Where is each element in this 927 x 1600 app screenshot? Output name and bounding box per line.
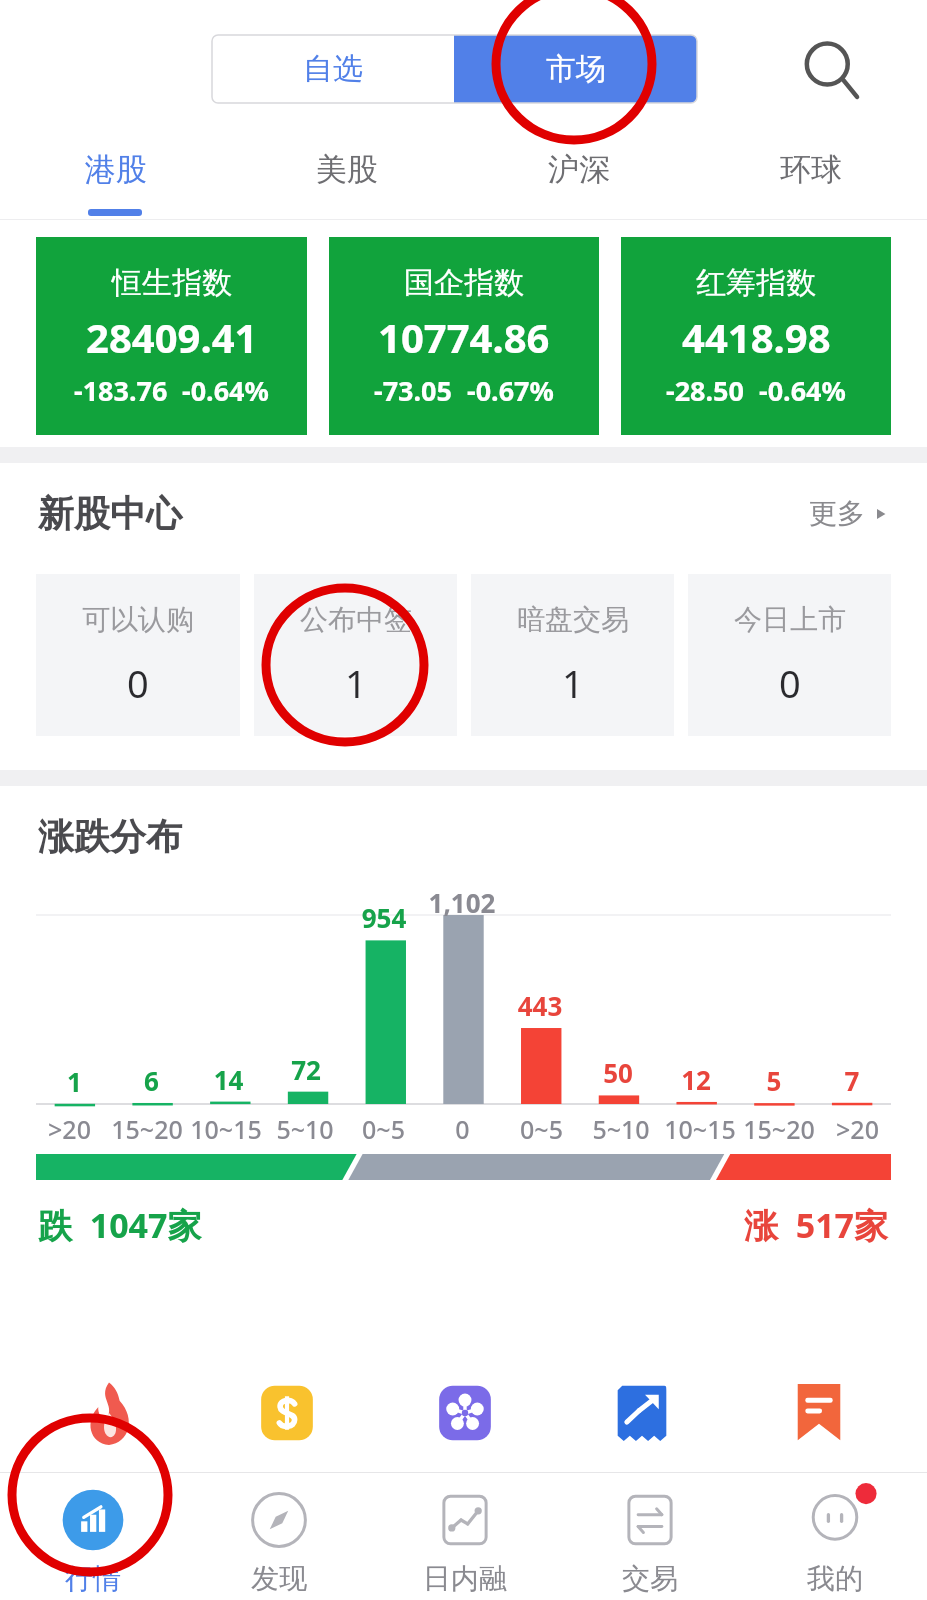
staticText: 红筹指数 bbox=[696, 264, 816, 302]
staticText: 15~20 bbox=[743, 1112, 815, 1146]
staticText: 港股 bbox=[85, 150, 147, 189]
staticText: 行情 bbox=[65, 1561, 121, 1596]
staticText: 15~20 bbox=[111, 1112, 183, 1146]
staticText: 可以认购 bbox=[82, 602, 194, 637]
button[interactable]: 热门 bbox=[20, 1354, 198, 1472]
button[interactable]: 红筹指数 bbox=[621, 237, 891, 435]
staticText: -28.50 bbox=[666, 372, 745, 409]
staticText: 0 bbox=[779, 657, 801, 709]
button[interactable]: 暗盘交易 bbox=[471, 574, 674, 736]
staticText: 恒生指数 bbox=[112, 264, 232, 302]
button[interactable]: 港股 bbox=[0, 125, 231, 213]
staticText: 1,102 bbox=[423, 885, 501, 920]
staticText: 5~10 bbox=[592, 1112, 650, 1146]
staticText: 日内融 bbox=[423, 1561, 507, 1596]
staticText: 72 bbox=[267, 1052, 345, 1087]
staticText: 6 bbox=[113, 1063, 190, 1098]
staticText: 沪深 bbox=[548, 150, 610, 189]
staticText: 美股 bbox=[316, 150, 378, 189]
staticText: 国企指数 bbox=[404, 264, 524, 302]
staticText: -73.05 bbox=[374, 372, 453, 409]
button[interactable]: Search bbox=[790, 28, 872, 110]
staticText: 50 bbox=[579, 1055, 657, 1090]
staticText: -0.67% bbox=[467, 372, 554, 409]
staticText: 更多 bbox=[809, 496, 865, 531]
staticText: -0.64% bbox=[182, 372, 269, 409]
staticText: 暗盘交易 bbox=[517, 602, 629, 637]
staticText: 12 bbox=[657, 1062, 735, 1097]
staticText: 5~10 bbox=[276, 1112, 334, 1146]
button[interactable]: 今日上市 bbox=[688, 574, 891, 736]
staticText: -0.64% bbox=[759, 372, 846, 409]
button[interactable]: 国企指数 bbox=[329, 237, 599, 435]
staticText: 0 bbox=[127, 657, 149, 709]
staticText: 28409.41 bbox=[86, 310, 258, 364]
button[interactable]: 恒生指数 bbox=[36, 237, 307, 435]
staticText: 954 bbox=[345, 900, 423, 935]
button[interactable]: 环球 bbox=[695, 125, 927, 213]
button[interactable]: 资金 bbox=[198, 1354, 376, 1472]
button[interactable]: 交易 bbox=[557, 1473, 742, 1600]
staticText: 5 bbox=[735, 1063, 813, 1098]
button[interactable]: 更多 bbox=[809, 496, 889, 531]
button[interactable]: 行情 bbox=[0, 1473, 186, 1600]
button[interactable]: 日内融 bbox=[372, 1473, 557, 1600]
button[interactable]: 公布中签 bbox=[254, 574, 457, 736]
staticText: 10~15 bbox=[664, 1112, 736, 1146]
button[interactable]: 市场 bbox=[454, 35, 697, 103]
staticText: 4418.98 bbox=[682, 310, 831, 364]
staticText: 自选 bbox=[303, 50, 363, 88]
staticText: -183.76 bbox=[74, 372, 168, 409]
button[interactable]: 发现 bbox=[186, 1473, 372, 1600]
staticText: 跌 1047家 bbox=[38, 1202, 202, 1248]
button[interactable]: 资讯 bbox=[730, 1354, 907, 1472]
staticText: 今日上市 bbox=[734, 602, 846, 637]
staticText: 10~15 bbox=[190, 1112, 262, 1146]
staticText: 公布中签 bbox=[300, 602, 412, 637]
staticText: >20 bbox=[48, 1112, 91, 1146]
button[interactable]: 沪深 bbox=[463, 125, 695, 213]
staticText: 10774.86 bbox=[378, 310, 550, 364]
button[interactable]: 港股通 bbox=[376, 1354, 553, 1472]
staticText: 1 bbox=[562, 657, 584, 709]
staticText: 1 bbox=[345, 657, 367, 709]
staticText: 0~5 bbox=[520, 1112, 563, 1146]
staticText: 涨跌分布 bbox=[38, 814, 182, 859]
staticText: 0 bbox=[455, 1112, 470, 1146]
staticText: 新股中心 bbox=[38, 491, 182, 536]
staticText: 涨 517家 bbox=[744, 1202, 889, 1248]
staticText: 14 bbox=[190, 1062, 267, 1097]
button[interactable]: 我的 bbox=[742, 1473, 927, 1600]
staticText: 7 bbox=[813, 1063, 891, 1098]
staticText: >20 bbox=[836, 1112, 879, 1146]
staticText: 市场 bbox=[546, 50, 606, 88]
button[interactable]: 自选 bbox=[212, 35, 454, 103]
staticText: 环球 bbox=[780, 150, 842, 189]
staticText: 发现 bbox=[251, 1561, 307, 1596]
button[interactable]: 美股 bbox=[231, 125, 463, 213]
button[interactable]: 可以认购 bbox=[36, 574, 240, 736]
staticText: 我的 bbox=[807, 1561, 863, 1596]
staticText: 0~5 bbox=[362, 1112, 405, 1146]
button[interactable]: 行情走势 bbox=[553, 1354, 730, 1472]
staticText: 443 bbox=[501, 988, 579, 1023]
staticText: 1 bbox=[36, 1064, 113, 1099]
staticText: 交易 bbox=[622, 1561, 678, 1596]
